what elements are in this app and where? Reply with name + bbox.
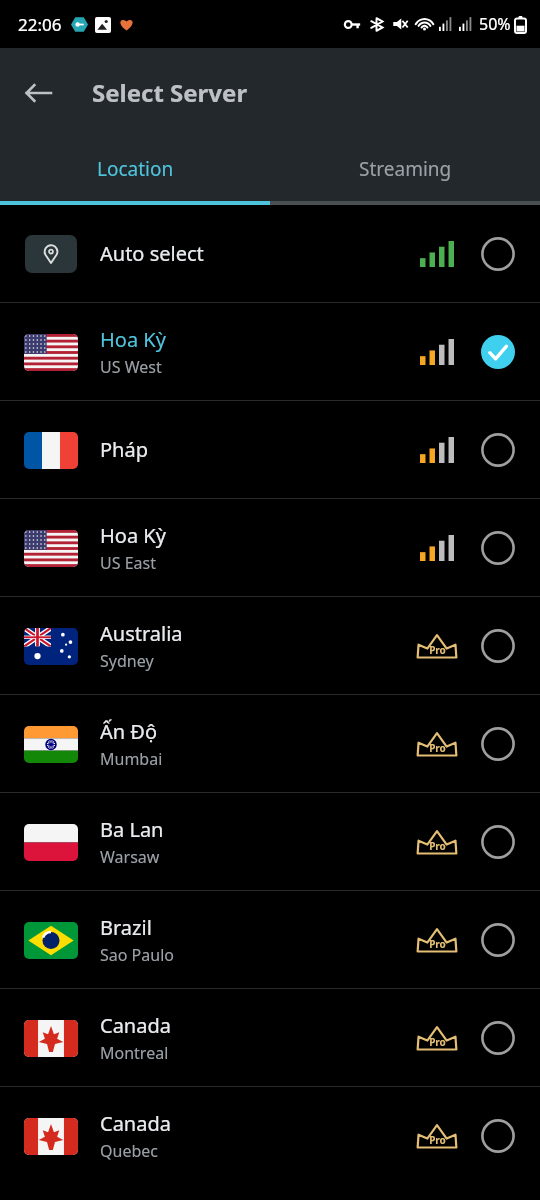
staticText: Pro <box>429 741 446 755</box>
button[interactable]: Hoa Kỳ <box>0 303 540 400</box>
button[interactable]: Ba Lan <box>0 793 540 890</box>
staticText: Mumbai <box>100 748 163 770</box>
staticText: Sydney <box>100 650 154 672</box>
staticText: Quebec <box>100 1140 158 1162</box>
staticText: Brazil <box>100 914 152 941</box>
staticText: Sao Paulo <box>100 944 174 966</box>
staticText: Canada <box>100 1012 171 1039</box>
button[interactable]: Canada <box>0 1087 540 1184</box>
staticText: Hoa Kỳ <box>100 326 166 353</box>
staticText: Pro <box>429 1133 446 1147</box>
button[interactable]: Back <box>10 65 66 121</box>
button[interactable]: Canada <box>0 989 540 1086</box>
staticText: US East <box>100 552 156 574</box>
button[interactable]: Auto select <box>0 205 540 302</box>
staticText: Streaming <box>359 156 452 182</box>
button[interactable]: Hoa Kỳ <box>0 499 540 596</box>
staticText: Pro <box>429 839 446 853</box>
staticText: Australia <box>100 620 183 647</box>
staticText: Warsaw <box>100 846 160 868</box>
button[interactable]: Ấn Độ <box>0 695 540 792</box>
staticText: Hoa Kỳ <box>100 522 166 549</box>
staticText: 50% <box>479 13 511 35</box>
button[interactable]: Australia <box>0 597 540 694</box>
staticText: Select Server <box>92 76 248 109</box>
staticText: Ấn Độ <box>100 718 158 745</box>
staticText: Location <box>97 156 174 182</box>
button[interactable]: Brazil <box>0 891 540 988</box>
staticText: Pro <box>429 1035 446 1049</box>
staticText: US West <box>100 356 162 378</box>
staticText: Auto select <box>100 240 204 267</box>
staticText: Canada <box>100 1110 171 1137</box>
staticText: Pro <box>429 643 446 657</box>
staticText: Pháp <box>100 436 148 463</box>
staticText: Ba Lan <box>100 816 164 843</box>
button[interactable]: Location <box>0 137 270 201</box>
staticText: Pro <box>429 937 446 951</box>
button[interactable]: Pháp <box>0 401 540 498</box>
staticText: Montreal <box>100 1042 169 1064</box>
button[interactable]: Streaming <box>270 137 540 201</box>
staticText: 22:06 <box>18 13 62 36</box>
